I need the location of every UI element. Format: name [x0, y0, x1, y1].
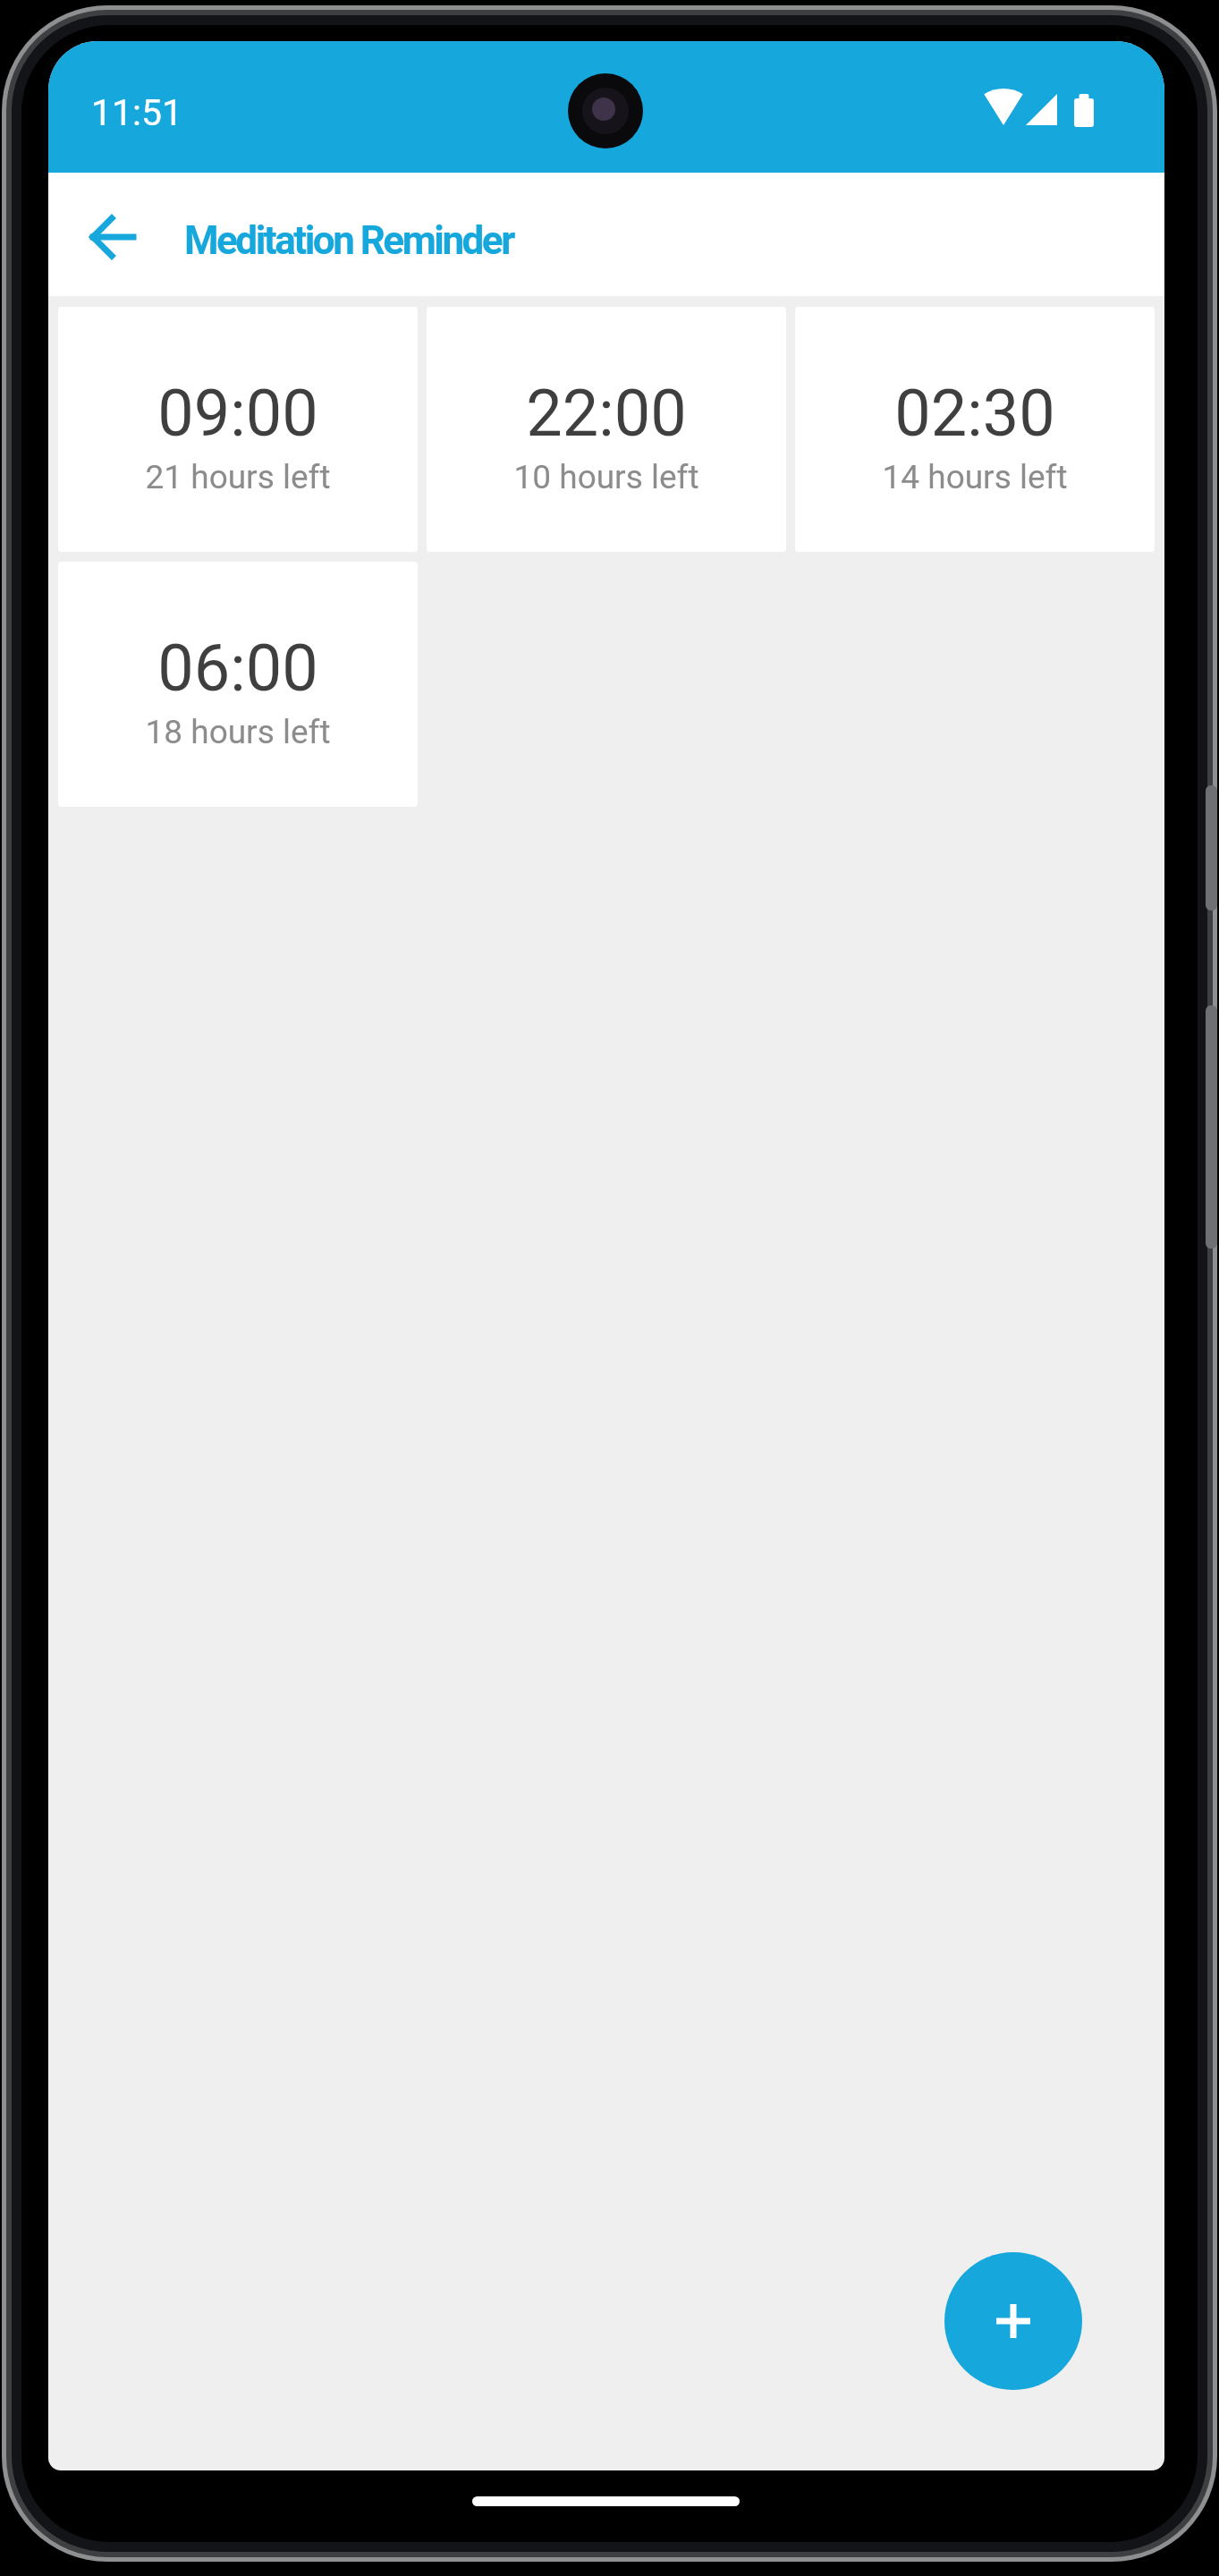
button[interactable]	[72, 214, 154, 260]
staticText: 14 hours left	[795, 458, 1155, 496]
button[interactable]: 02:30	[795, 307, 1155, 552]
staticText: 02:30	[795, 376, 1155, 451]
button[interactable]: 06:00	[58, 562, 418, 807]
staticText: 18 hours left	[58, 713, 418, 751]
button[interactable]: 09:00	[58, 307, 418, 552]
staticText: 09:00	[58, 376, 418, 451]
staticText: 10 hours left	[427, 458, 786, 496]
button[interactable]	[944, 2252, 1082, 2390]
button[interactable]: 22:00	[427, 307, 786, 552]
staticText: 21 hours left	[58, 458, 418, 496]
staticText: 06:00	[58, 631, 418, 706]
staticText: Meditation Reminder	[184, 217, 513, 264]
staticText: 22:00	[427, 376, 786, 451]
staticText: 11:51	[91, 91, 183, 134]
